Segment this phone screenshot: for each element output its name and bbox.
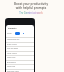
- button[interactable]: Compare ideas: [6, 69, 34, 72]
- button[interactable]: Write a note: [6, 51, 34, 56]
- staticText: Make a list: [7, 56, 16, 58]
- staticText: Draft a reply: [7, 43, 17, 45]
- button[interactable]: Brainstorm: [6, 60, 34, 65]
- staticText: Plan my week: [7, 47, 18, 49]
- button[interactable]: Polish text: [6, 64, 34, 69]
- button[interactable]: Today: [7, 32, 12, 34]
- staticText: Summarize this: [7, 38, 20, 40]
- button[interactable]: Selected filter: [15, 32, 20, 35]
- staticText: Prompts: [8, 27, 17, 30]
- staticText: with helpful prompts: [0, 6, 62, 10]
- staticText: Brainstorm: [7, 61, 16, 63]
- button[interactable]: Summarize this: [6, 37, 34, 42]
- button[interactable]: Plan my week: [6, 46, 34, 51]
- button[interactable]: Make a list: [6, 55, 34, 60]
- staticText: Polish text: [7, 65, 16, 67]
- button[interactable]: Draft a reply: [6, 42, 34, 47]
- staticText: Write a note: [7, 52, 17, 54]
- button[interactable]: Try Gemini at work: [0, 11, 62, 14]
- staticText: Try Gemini at work: [19, 11, 43, 14]
- staticText: Compare ideas: [7, 70, 19, 72]
- staticText: Boost your productivity: [0, 2, 62, 6]
